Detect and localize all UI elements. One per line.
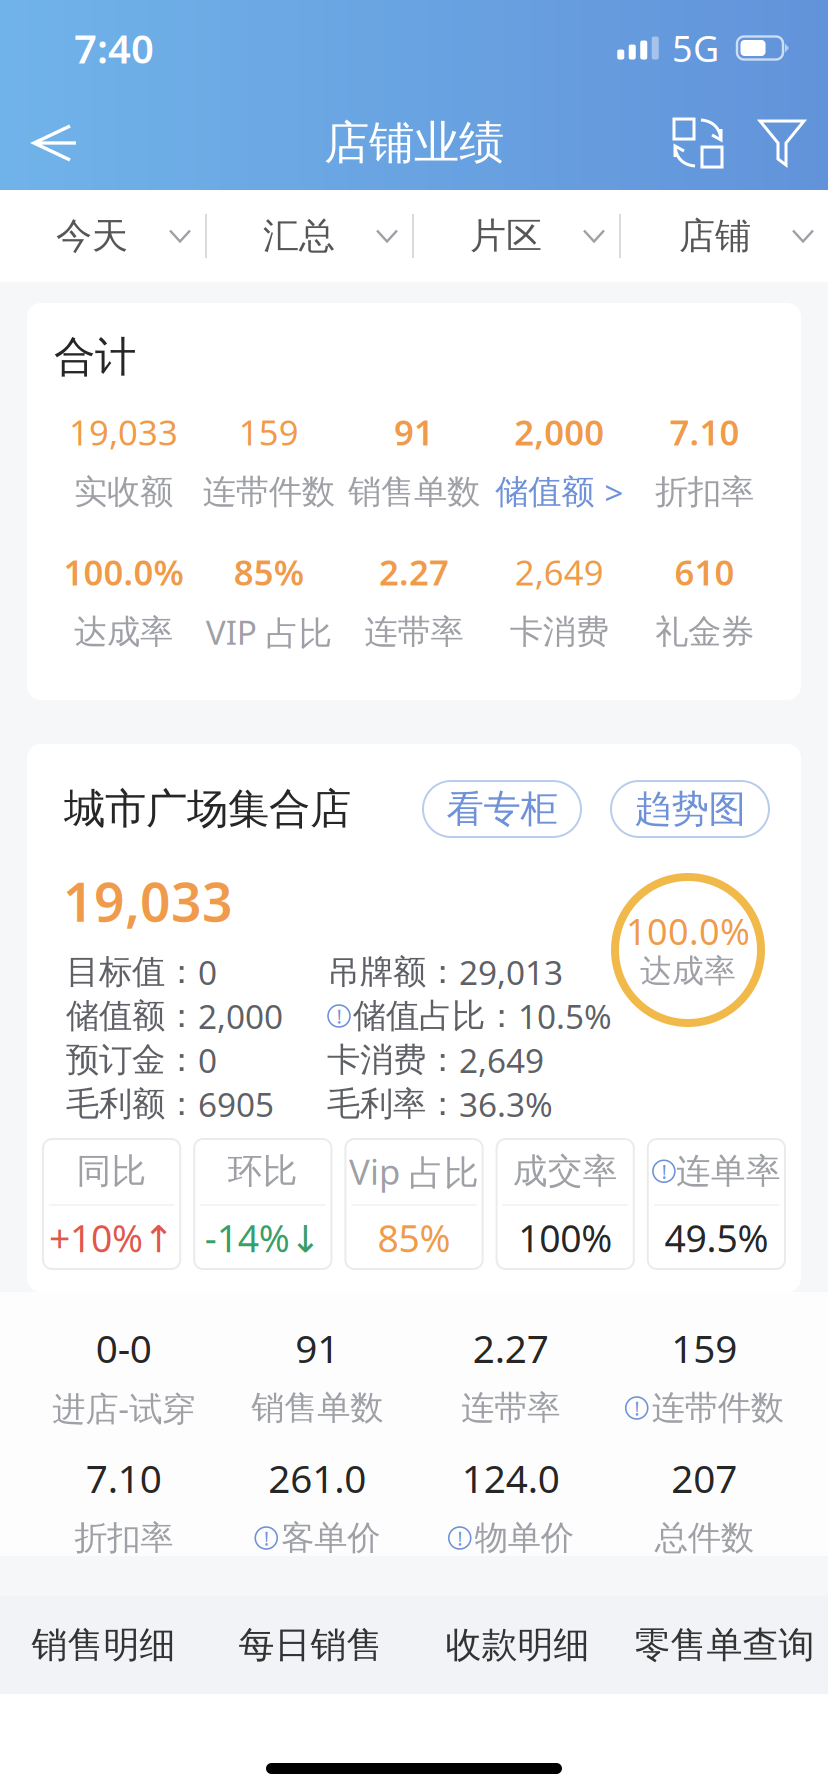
staticText: 连带件数 bbox=[203, 471, 335, 513]
staticText: 29,013 bbox=[459, 949, 563, 995]
staticText: 100.0% bbox=[626, 906, 750, 955]
staticText: 19,033 bbox=[63, 865, 233, 937]
staticText: 261.0 bbox=[268, 1452, 366, 1504]
staticText: 连单率 bbox=[676, 1149, 781, 1193]
staticText: 城市广场集合店 bbox=[64, 783, 351, 835]
button[interactable]: 销售明细 bbox=[0, 1597, 207, 1693]
staticText: Vip 占比 bbox=[349, 1148, 479, 1195]
staticText: 2,000 bbox=[198, 993, 283, 1039]
staticText: > bbox=[604, 469, 623, 515]
staticText: 收款明细 bbox=[445, 1622, 589, 1668]
staticText: 片区 bbox=[470, 213, 542, 259]
staticText: 85% bbox=[377, 1212, 450, 1263]
staticText: 销售单数 bbox=[348, 471, 480, 513]
staticText: 店铺 bbox=[679, 213, 751, 259]
staticText: 19,033 bbox=[69, 408, 178, 456]
staticText: +10%↑ bbox=[49, 1212, 174, 1263]
staticText: 销售单数 bbox=[251, 1387, 383, 1429]
staticText: 124.0 bbox=[462, 1452, 560, 1504]
staticText: 折扣率 bbox=[655, 471, 754, 513]
button[interactable]: 每日销售 bbox=[207, 1597, 414, 1693]
staticText: 2.27 bbox=[473, 1322, 549, 1374]
staticText: 0-0 bbox=[96, 1322, 152, 1374]
staticText: 达成率 bbox=[640, 951, 736, 991]
staticText: ! bbox=[336, 1002, 341, 1030]
staticText: 连带件数 bbox=[652, 1387, 784, 1429]
staticText: 今天 bbox=[56, 213, 128, 259]
staticText: VIP 占比 bbox=[206, 609, 332, 655]
staticText: 零售单查询 bbox=[634, 1622, 814, 1668]
staticText: 每日销售 bbox=[238, 1622, 382, 1668]
staticText: 合计 bbox=[54, 331, 136, 383]
staticText: 连带率 bbox=[461, 1387, 560, 1429]
staticText: 物单价 bbox=[475, 1517, 574, 1559]
staticText: ! bbox=[264, 1524, 269, 1552]
staticText: 0 bbox=[198, 1037, 217, 1083]
staticText: 49.5% bbox=[664, 1212, 768, 1263]
button[interactable]: Switch view bbox=[655, 96, 741, 190]
staticText: 折扣率 bbox=[74, 1517, 173, 1559]
staticText: 100% bbox=[518, 1212, 612, 1263]
staticText: 储值占比： bbox=[353, 995, 518, 1037]
staticText: 卡消费： bbox=[327, 1039, 459, 1081]
staticText: 85% bbox=[234, 548, 304, 596]
staticText: ! bbox=[661, 1158, 666, 1185]
staticText: 610 bbox=[674, 548, 734, 596]
staticText: 7.10 bbox=[669, 408, 739, 456]
staticText: 0 bbox=[198, 949, 217, 995]
staticText: 连带率 bbox=[364, 611, 463, 653]
staticText: 毛利率： bbox=[327, 1083, 459, 1125]
staticText: ! bbox=[457, 1524, 462, 1552]
button[interactable]: 今天 bbox=[0, 190, 207, 282]
staticText: 2,649 bbox=[459, 1037, 544, 1083]
staticText: 趋势图 bbox=[634, 785, 745, 832]
staticText: 10.5% bbox=[518, 993, 612, 1039]
staticText: 91 bbox=[295, 1322, 339, 1374]
staticText: 销售明细 bbox=[31, 1622, 175, 1668]
staticText: 实收额 bbox=[74, 471, 173, 513]
staticText: 进店-试穿 bbox=[52, 1385, 195, 1431]
staticText: 91 bbox=[394, 408, 434, 456]
button[interactable]: 看专柜 bbox=[423, 781, 581, 837]
button[interactable]: 零售单查询 bbox=[621, 1597, 828, 1693]
staticText: 达成率 bbox=[74, 611, 173, 653]
staticText: 汇总 bbox=[263, 213, 335, 259]
staticText: 159 bbox=[671, 1322, 737, 1374]
staticText: -14%↓ bbox=[205, 1212, 321, 1263]
staticText: 目标值： bbox=[66, 951, 198, 993]
button[interactable]: Back bbox=[8, 96, 102, 190]
staticText: 看专柜 bbox=[446, 785, 557, 832]
staticText: 2,000 bbox=[514, 408, 604, 456]
staticText: 同比 bbox=[77, 1149, 147, 1193]
staticText: 5G bbox=[672, 23, 719, 72]
staticText: 207 bbox=[671, 1452, 737, 1504]
staticText: 6905 bbox=[198, 1081, 274, 1127]
staticText: 2,649 bbox=[515, 548, 604, 596]
staticText: 储值额： bbox=[66, 995, 198, 1037]
staticText: 卡消费 bbox=[510, 611, 609, 653]
staticText: 客单价 bbox=[281, 1517, 380, 1559]
staticText: 预订金： bbox=[66, 1039, 198, 1081]
button[interactable]: Filter bbox=[741, 96, 823, 190]
button[interactable]: 收款明细 bbox=[414, 1597, 621, 1693]
staticText: 100.0% bbox=[64, 548, 184, 596]
staticText: 7:40 bbox=[74, 21, 154, 75]
staticText: 成交率 bbox=[513, 1149, 618, 1193]
staticText: 毛利额： bbox=[66, 1083, 198, 1125]
staticText: 总件数 bbox=[655, 1517, 754, 1559]
staticText: 7.10 bbox=[86, 1452, 162, 1504]
button[interactable]: 店铺 bbox=[621, 190, 828, 282]
staticText: 储值额 bbox=[495, 471, 594, 513]
staticText: 2.27 bbox=[379, 548, 449, 596]
staticText: 36.3% bbox=[459, 1081, 553, 1127]
button[interactable]: 片区 bbox=[414, 190, 621, 282]
button[interactable]: 趋势图 bbox=[611, 781, 769, 837]
staticText: 礼金券 bbox=[655, 611, 754, 653]
staticText: 吊牌额： bbox=[327, 951, 459, 993]
staticText: 环比 bbox=[228, 1149, 298, 1193]
button[interactable]: 汇总 bbox=[207, 190, 414, 282]
staticText: 店铺业绩 bbox=[324, 114, 504, 171]
staticText: 159 bbox=[239, 408, 299, 456]
staticText: ! bbox=[634, 1394, 639, 1422]
